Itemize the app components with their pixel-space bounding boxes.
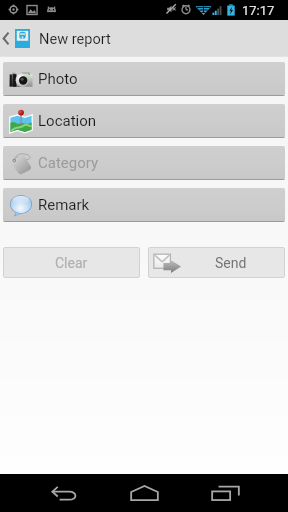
staticText: Remark xyxy=(38,196,90,214)
staticText: Send xyxy=(215,255,247,271)
staticText: 17:17 xyxy=(242,3,275,18)
button[interactable]: Category xyxy=(3,146,285,180)
button[interactable]: Photo xyxy=(3,62,285,96)
button[interactable]: Up xyxy=(0,20,288,57)
staticText: Clear xyxy=(55,255,88,271)
button[interactable]: Home xyxy=(104,474,185,512)
other: Up xyxy=(3,32,9,45)
button[interactable]: Location xyxy=(3,104,285,138)
button[interactable]: Recent apps xyxy=(185,474,266,512)
staticText: Category xyxy=(38,154,99,172)
staticText: Location xyxy=(38,112,97,130)
button[interactable]: Back xyxy=(24,474,104,512)
staticText: New report xyxy=(39,30,111,47)
button[interactable]: Send xyxy=(148,247,285,278)
button[interactable]: Remark xyxy=(3,188,285,222)
button[interactable]: Clear xyxy=(3,247,140,278)
staticText: Photo xyxy=(38,70,78,88)
